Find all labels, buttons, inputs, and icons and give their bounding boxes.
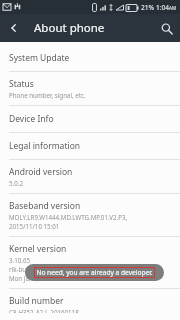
- staticText: C8-H352-A2-L-20160118: [9, 308, 79, 313]
- staticText: 21%: [141, 3, 154, 12]
- staticText: 2015/11/10 15:01: [9, 222, 60, 230]
- staticText: Android version: [9, 166, 73, 178]
- staticText: About phone: [34, 20, 105, 36]
- button[interactable]: Back: [0, 14, 28, 42]
- button[interactable]: Search: [152, 14, 180, 42]
- staticText: Legal information: [9, 140, 81, 152]
- button[interactable]: Status: [0, 72, 180, 105]
- staticText: 3.10.65: [9, 256, 31, 264]
- staticText: No need, you are already a developer.: [36, 268, 153, 277]
- staticText: Baseband version: [9, 200, 81, 212]
- staticText: MOLY.LR9.W1444.MD.LWTG.MP.01.V2.P3,: [9, 213, 128, 221]
- staticText: Status: [9, 78, 34, 90]
- staticText: Device Info: [9, 113, 54, 125]
- button[interactable]: Build number: [0, 289, 180, 320]
- staticText: AM: [169, 5, 177, 11]
- button[interactable]: Legal information: [0, 133, 180, 159]
- staticText: 1:04: [156, 3, 169, 12]
- button[interactable]: Device Info: [0, 106, 180, 132]
- staticText: Phone number, signal, etc.: [9, 91, 86, 99]
- staticText: 5.0.2: [9, 179, 23, 187]
- staticText: Mon Jan 18 20:33:52 CST 2016: [9, 274, 96, 282]
- staticText: Kernel version: [9, 243, 67, 255]
- staticText: Build number: [9, 295, 64, 307]
- button[interactable]: Kernel version: [0, 237, 180, 288]
- button[interactable]: System Update: [0, 46, 180, 71]
- staticText: rlk-buildsrv2@rlk-buildsrv2 #1: [9, 265, 97, 273]
- button[interactable]: Android version: [0, 160, 180, 193]
- button[interactable]: Baseband version: [0, 194, 180, 236]
- staticText: System Update: [9, 52, 70, 64]
